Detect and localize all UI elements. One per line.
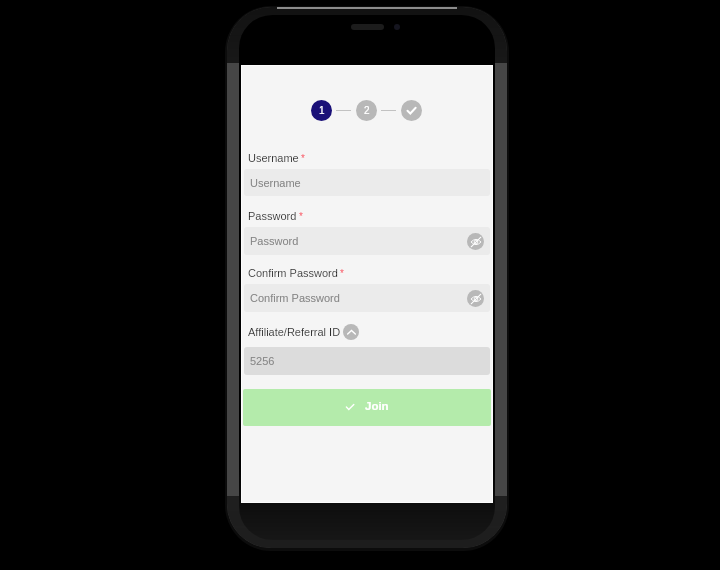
staticText: Password: [248, 210, 297, 221]
staticText: 1: [319, 105, 325, 116]
staticText: Join: [365, 400, 389, 413]
staticText: Username: [248, 152, 299, 163]
staticText: Confirm Password: [250, 292, 340, 304]
button[interactable]: Step 1: [311, 100, 332, 121]
staticText: 5256: [250, 355, 275, 367]
staticText: Password: [250, 235, 299, 247]
staticText: *: [301, 153, 305, 164]
staticText: Username: [250, 177, 301, 189]
button[interactable]: Confirm Password: [244, 284, 490, 312]
staticText: Affiliate/Referral ID: [248, 326, 341, 338]
button[interactable]: Step 3 complete: [401, 100, 422, 121]
button[interactable]: Join: [243, 389, 491, 426]
button[interactable]: Step 2: [356, 100, 377, 121]
staticText: *: [340, 268, 344, 279]
staticText: *: [299, 211, 303, 222]
button[interactable]: Show password: [467, 290, 484, 307]
staticText: Confirm Password: [248, 267, 338, 278]
button[interactable]: Password: [244, 227, 490, 255]
button[interactable]: 5256: [244, 347, 490, 375]
button[interactable]: Username: [244, 169, 490, 196]
staticText: 2: [364, 105, 370, 116]
button[interactable]: Show password: [467, 233, 484, 250]
button[interactable]: Collapse Affiliate/Referral ID: [343, 324, 359, 340]
